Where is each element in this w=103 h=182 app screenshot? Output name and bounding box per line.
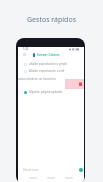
button[interactable]: Añadir exportación a xml: [24, 69, 81, 73]
button[interactable]: Extraer Colores: [23, 52, 81, 57]
staticText: 1:24: [23, 47, 29, 51]
staticText: Extraer Colores: [37, 53, 60, 57]
staticText: Añadir tono: [23, 168, 39, 172]
staticText: Gestos rápidos: [0, 15, 103, 25]
button[interactable]: añadir exportación a gmail: [24, 62, 81, 66]
button[interactable]: Add: [79, 168, 83, 172]
button[interactable]: calcos blob en un favoritos: [18, 77, 56, 81]
staticText: Añadir exportación a xml: [29, 69, 65, 73]
staticText: Mipolar página uploads: [29, 90, 63, 94]
button[interactable]: Mipolar página uploads: [24, 90, 81, 94]
staticText: añadir exportación a gmail: [29, 62, 67, 66]
button[interactable]: Delete: [65, 79, 84, 89]
